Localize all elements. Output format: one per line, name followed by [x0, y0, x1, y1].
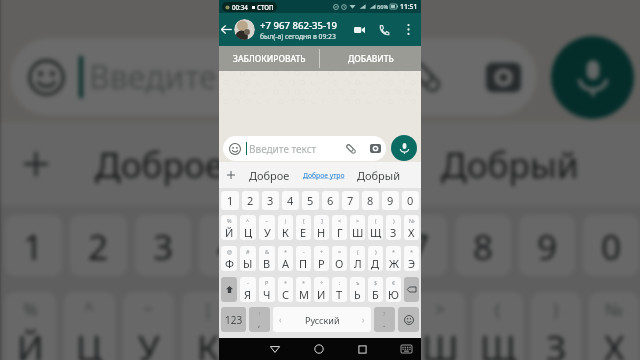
button[interactable]: 0	[402, 191, 419, 210]
staticText: Ы	[243, 256, 253, 271]
button[interactable]: 4	[282, 191, 299, 210]
button[interactable]: Record voice message	[391, 135, 417, 161]
button[interactable]: |	[182, 292, 233, 360]
staticText: ,	[258, 318, 261, 329]
button[interactable]: ]	[299, 292, 349, 360]
button[interactable]: 0	[583, 215, 639, 276]
button[interactable]: 123	[221, 307, 246, 332]
button[interactable]: ÷	[314, 277, 329, 302]
button[interactable]: *	[278, 277, 293, 302]
button[interactable]: Recents	[353, 340, 371, 358]
button[interactable]: Record voice message	[551, 36, 634, 119]
button[interactable]: ^	[64, 292, 115, 360]
button[interactable]: 8	[455, 215, 511, 276]
button[interactable]: 3	[262, 191, 279, 210]
button[interactable]: Period	[374, 307, 395, 332]
button[interactable]: 2	[70, 215, 127, 276]
button[interactable]: *	[386, 246, 401, 271]
button[interactable]: 6	[327, 215, 383, 276]
button[interactable]: №	[589, 292, 639, 360]
button[interactable]: Добрый	[422, 122, 597, 205]
button[interactable]: Shift	[221, 277, 237, 302]
button[interactable]: Home	[310, 340, 328, 358]
button[interactable]: Back	[219, 13, 234, 46]
button[interactable]: Доброе	[73, 122, 247, 205]
button[interactable]: <	[332, 215, 347, 240]
button[interactable]: [	[296, 215, 311, 240]
button[interactable]: #	[240, 246, 256, 271]
button[interactable]: :	[332, 277, 347, 302]
button[interactable]: Call	[372, 13, 396, 46]
button[interactable]: ЗАБЛОКИРОВАТЬ	[219, 46, 319, 71]
button[interactable]: Contact photo	[234, 19, 255, 40]
button[interactable]: )	[386, 215, 401, 240]
button[interactable]: 7	[391, 215, 447, 276]
button[interactable]: -	[240, 277, 256, 302]
button[interactable]: 4	[199, 215, 255, 276]
button[interactable]: )	[531, 292, 581, 360]
button[interactable]: 2	[242, 191, 259, 210]
button[interactable]: Hide keyboard	[397, 340, 415, 358]
button[interactable]: 7	[342, 191, 359, 210]
button[interactable]: )	[368, 246, 383, 271]
button[interactable]: 1	[5, 215, 62, 276]
button[interactable]: [	[241, 292, 291, 360]
button[interactable]: =	[332, 246, 347, 271]
button[interactable]: 9	[519, 215, 575, 276]
button[interactable]: €	[386, 277, 401, 302]
button[interactable]: %	[221, 215, 237, 240]
button[interactable]: &	[259, 246, 275, 271]
button[interactable]: ~	[123, 292, 174, 360]
button[interactable]: ДОБАВИТЬ	[320, 46, 421, 71]
button[interactable]: ъ	[350, 277, 365, 302]
button[interactable]: ‹	[273, 307, 371, 332]
button[interactable]: Video call	[346, 13, 372, 46]
button[interactable]: *	[296, 277, 311, 302]
button[interactable]: Доброе утро	[296, 162, 351, 188]
button[interactable]: ~	[259, 215, 275, 240]
button[interactable]: Back	[266, 340, 284, 358]
button[interactable]: 3	[135, 215, 191, 276]
button[interactable]: Добрый	[351, 162, 406, 188]
button[interactable]: 9	[382, 191, 399, 210]
button[interactable]: Введите текст	[10, 38, 537, 116]
button[interactable]: >	[350, 215, 365, 240]
button[interactable]: Доброе утро	[247, 122, 422, 205]
button[interactable]: ^	[240, 215, 256, 240]
button[interactable]: Comma	[249, 307, 270, 332]
button[interactable]: 6	[322, 191, 339, 210]
button[interactable]: More suggestions	[0, 122, 73, 205]
button[interactable]: *	[404, 246, 419, 271]
button[interactable]: Р	[259, 277, 275, 302]
staticText: >	[435, 297, 446, 321]
button[interactable]: <	[357, 292, 407, 360]
button[interactable]: (	[350, 246, 365, 271]
button[interactable]: (	[473, 292, 523, 360]
button[interactable]: -	[296, 246, 311, 271]
button[interactable]: Backspace	[404, 277, 419, 302]
button[interactable]: Emoji	[398, 307, 419, 332]
button[interactable]: |	[278, 215, 293, 240]
button[interactable]: 00:34	[222, 2, 277, 12]
button[interactable]: 8	[362, 191, 379, 210]
button[interactable]: More options	[396, 13, 421, 46]
button[interactable]: Введите текст	[223, 136, 386, 161]
button[interactable]: Доброе	[242, 162, 296, 188]
button[interactable]: 1	[221, 191, 239, 210]
button[interactable]: ]	[314, 215, 329, 240]
button[interactable]: +	[314, 246, 329, 271]
button[interactable]: 5	[263, 215, 319, 276]
button[interactable]: 5	[302, 191, 319, 210]
staticText: *	[284, 248, 288, 255]
button[interactable]: №	[404, 215, 419, 240]
button[interactable]: More suggestions	[219, 162, 242, 188]
button[interactable]: %	[5, 292, 56, 360]
button[interactable]: >	[415, 292, 465, 360]
staticText: !	[259, 310, 261, 317]
button[interactable]: @	[221, 246, 237, 271]
button[interactable]: $	[368, 277, 383, 302]
staticText: %	[23, 297, 38, 321]
button[interactable]: *	[278, 246, 293, 271]
button[interactable]: (	[368, 215, 383, 240]
staticText: [	[303, 217, 305, 224]
